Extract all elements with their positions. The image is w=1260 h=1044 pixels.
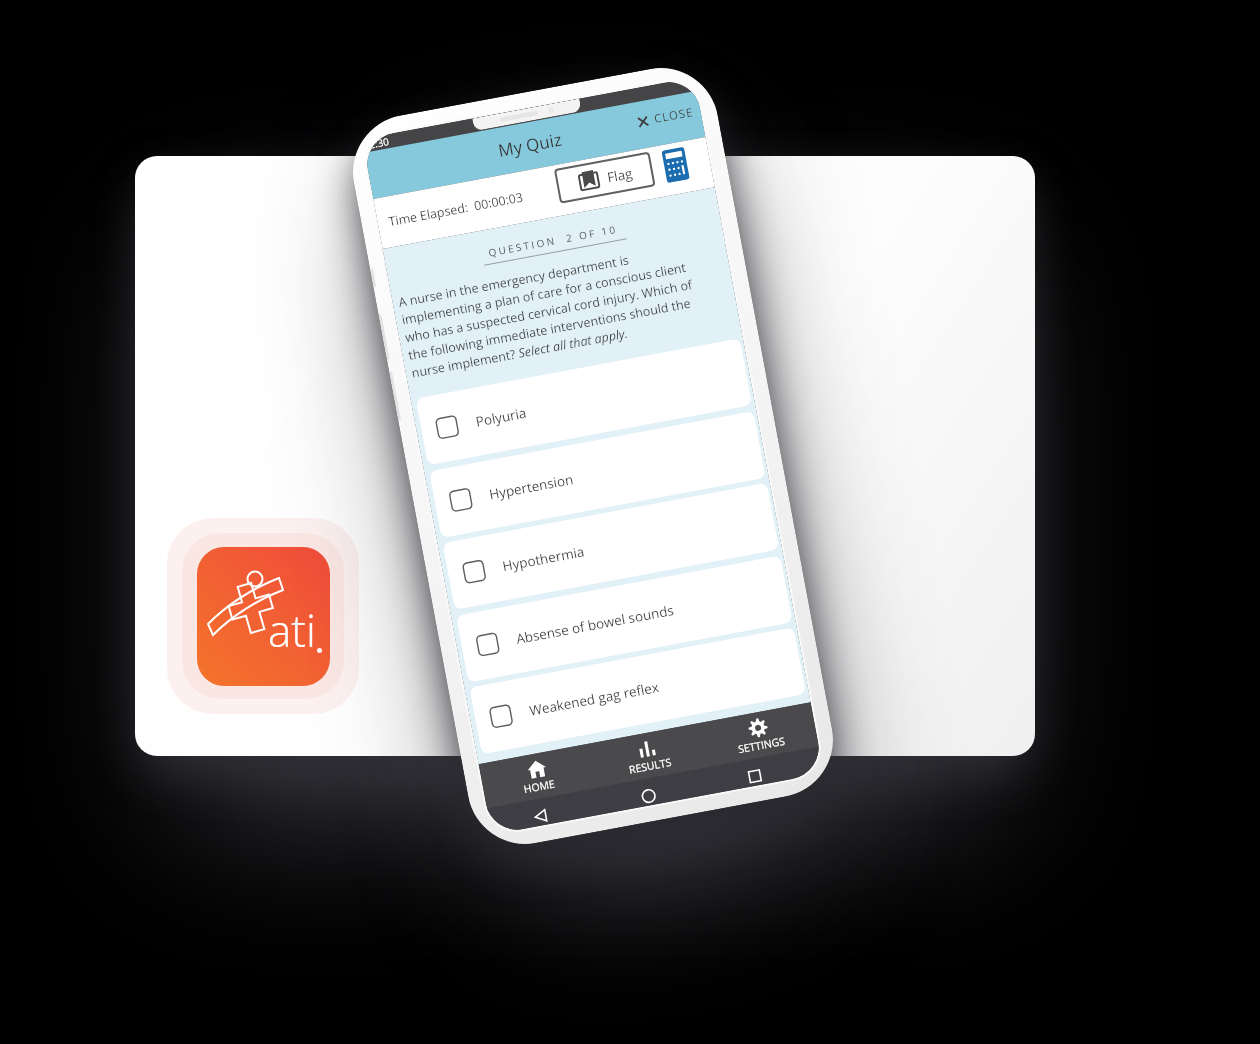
staticText: HOME: [523, 777, 557, 796]
button[interactable]: Home: [640, 787, 657, 805]
staticText: 2:30: [368, 134, 390, 152]
button[interactable]: Polyuria: [415, 338, 752, 465]
staticText: Hypothermia: [501, 542, 586, 575]
button[interactable]: Weakened gag reflex: [469, 627, 806, 754]
button[interactable]: HOME: [478, 744, 597, 808]
staticText: Time Elapsed: 00:00:03: [387, 188, 525, 230]
button[interactable]: ATI app icon: [197, 547, 330, 686]
button[interactable]: CLOSE: [634, 102, 697, 132]
button[interactable]: Flag: [554, 152, 656, 204]
staticText: QUESTION 2 OF 10: [385, 203, 720, 278]
staticText: Flag: [606, 164, 634, 187]
staticText: ati: [268, 600, 316, 660]
button[interactable]: Calculator: [659, 146, 692, 184]
button[interactable]: Back: [532, 807, 549, 825]
staticText: SETTINGS: [737, 734, 787, 756]
staticText: Absense of bowel sounds: [515, 601, 675, 648]
button[interactable]: RESULTS: [589, 723, 708, 788]
button[interactable]: Recents: [747, 769, 762, 784]
staticText: CLOSE: [653, 104, 695, 127]
button[interactable]: Absense of bowel sounds: [456, 555, 793, 683]
staticText: Hypertension: [488, 470, 575, 503]
staticText: My Quiz: [367, 102, 698, 186]
button[interactable]: Hypothermia: [442, 483, 779, 610]
button[interactable]: SETTINGS: [700, 702, 819, 767]
staticText: RESULTS: [628, 755, 673, 776]
staticText: A nurse in the emergency department is i…: [397, 241, 700, 382]
staticText: Weakened gag reflex: [528, 678, 661, 720]
staticText: Polyuria: [474, 403, 528, 431]
button[interactable]: Hypertension: [429, 411, 766, 538]
